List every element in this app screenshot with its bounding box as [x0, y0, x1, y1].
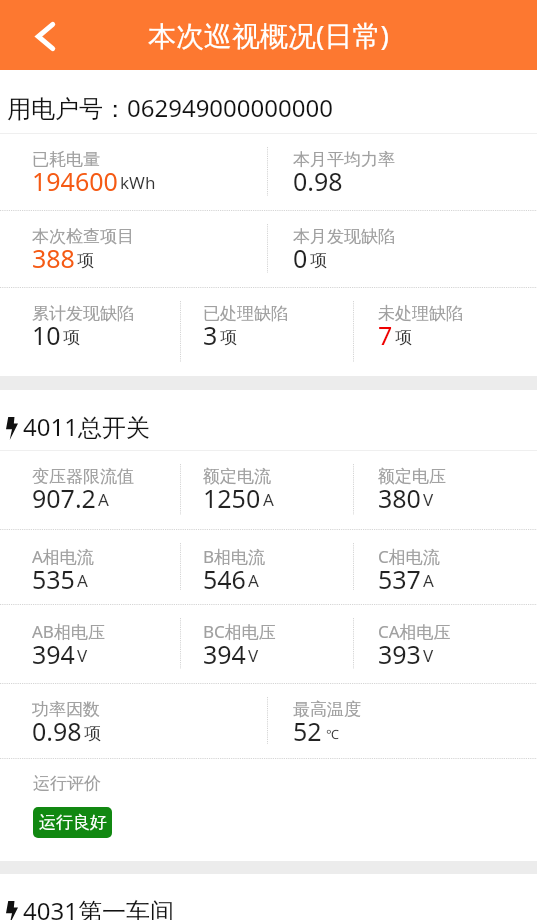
staticText: 4031第一车间	[23, 894, 174, 920]
staticText: 项	[63, 327, 80, 348]
staticText: 3	[203, 318, 218, 352]
staticText: BC相电压	[203, 620, 276, 643]
staticText: 已处理缺陷	[203, 303, 288, 324]
staticText: 0	[293, 241, 308, 275]
button[interactable]: 4011总开关	[0, 390, 537, 451]
staticText: V	[248, 644, 259, 667]
staticText: 394	[203, 637, 246, 671]
staticText: 本月平均力率	[293, 149, 395, 170]
staticText: 项	[77, 250, 94, 271]
staticText: 功率因数	[32, 699, 100, 720]
staticText: 本月发现缺陷	[293, 226, 395, 247]
staticText: 380	[378, 481, 421, 515]
staticText: ℃	[326, 725, 339, 743]
staticText: A	[248, 569, 259, 592]
staticText: 已耗电量	[32, 149, 100, 170]
staticText: 7	[378, 318, 393, 352]
staticText: 52	[293, 714, 322, 748]
button[interactable]: Back	[18, 0, 72, 70]
button[interactable]: 4031第一车间	[0, 874, 537, 920]
staticText: 907.2	[32, 481, 96, 515]
staticText: A	[77, 569, 88, 592]
staticText: 537	[378, 562, 421, 596]
staticText: CA相电压	[378, 620, 451, 643]
staticText: 388	[32, 241, 75, 275]
staticText: 额定电压	[378, 466, 446, 487]
staticText: V	[77, 644, 88, 667]
staticText: 额定电流	[203, 466, 271, 487]
staticText: 0.98	[32, 714, 82, 748]
staticText: 0.98	[293, 164, 343, 198]
staticText: 最高温度	[293, 699, 361, 720]
staticText: V	[423, 644, 434, 667]
staticText: 本次检查项目	[32, 226, 134, 247]
staticText: 项	[395, 327, 412, 348]
staticText: 累计发现缺陷	[32, 303, 134, 324]
staticText: A	[98, 488, 109, 511]
staticText: 用电户号：062949000000000	[7, 91, 333, 124]
staticText: 变压器限流值	[32, 466, 134, 487]
staticText: C相电流	[378, 545, 440, 568]
staticText: 未处理缺陷	[378, 303, 463, 324]
staticText: 项	[310, 250, 327, 271]
staticText: 194600	[32, 164, 118, 198]
staticText: A	[263, 488, 274, 511]
staticText: 项	[220, 327, 237, 348]
staticText: 535	[32, 562, 75, 596]
staticText: 运行良好	[39, 812, 107, 833]
staticText: kWh	[120, 171, 156, 194]
staticText: 项	[84, 723, 101, 744]
staticText: 本次巡视概况(日常)	[148, 16, 389, 54]
staticText: A	[423, 569, 434, 592]
staticText: 393	[378, 637, 421, 671]
staticText: 1250	[203, 481, 261, 515]
staticText: V	[423, 488, 434, 511]
staticText: 546	[203, 562, 246, 596]
staticText: A相电流	[32, 545, 94, 568]
staticText: 394	[32, 637, 75, 671]
staticText: 运行评价	[33, 773, 101, 794]
staticText: 4011总开关	[23, 410, 150, 443]
staticText: AB相电压	[32, 620, 105, 643]
button[interactable]: 运行良好	[33, 807, 112, 838]
staticText: 10	[32, 318, 61, 352]
staticText: B相电流	[203, 545, 266, 568]
